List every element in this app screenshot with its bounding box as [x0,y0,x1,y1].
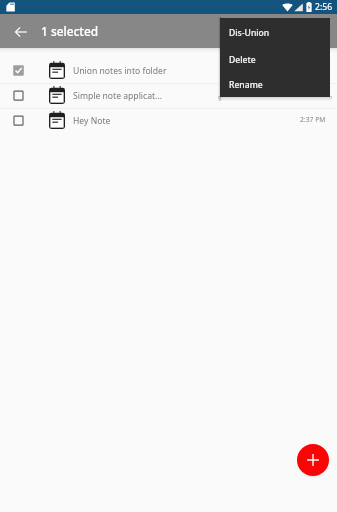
staticText: Dis-Union [229,27,270,39]
staticText: Union notes into folder [73,65,326,77]
button[interactable]: Delete [220,46,330,73]
button[interactable]: Back [0,14,35,48]
button[interactable]: Union notes into folder [0,59,337,83]
button[interactable]: Rename [220,73,330,97]
staticText: 2:56 [315,1,333,13]
staticText: 1 selected [41,23,99,39]
staticText: Simple note applicat... [73,90,326,102]
staticText: 2:37 PM [300,115,326,124]
staticText: Delete [229,54,256,66]
button[interactable]: Add note [297,444,329,476]
button[interactable]: Dis-Union [220,19,330,46]
staticText: Rename [229,79,263,91]
button[interactable]: Hey Note [0,109,337,133]
button[interactable]: Simple note applicat... [0,84,337,108]
staticText: Hey Note [73,115,300,127]
